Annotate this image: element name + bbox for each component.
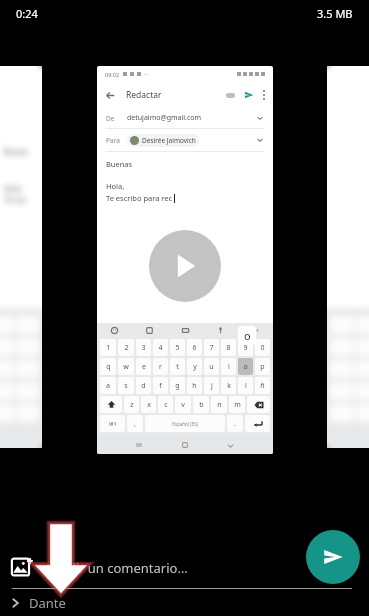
staticText: 9 (243, 343, 248, 353)
staticText: l (245, 381, 247, 391)
button[interactable] (245, 415, 270, 432)
button[interactable]: e (136, 358, 151, 375)
button[interactable]: l (238, 377, 253, 394)
button[interactable]: o (238, 358, 253, 375)
staticText: 0:24 (16, 6, 38, 21)
button[interactable]: 7 (204, 339, 219, 356)
staticText: detujaimo@gmail.com (127, 113, 202, 123)
button[interactable]: j (204, 377, 219, 394)
staticText: 2 (124, 343, 129, 353)
button[interactable]: 0 (255, 339, 270, 356)
staticText: De (106, 114, 115, 123)
button[interactable]: . (227, 415, 243, 432)
button[interactable]: b (193, 396, 209, 413)
button[interactable]: m (229, 396, 245, 413)
button[interactable]: Español (ES) (145, 415, 225, 432)
button[interactable]: d (136, 377, 151, 394)
button[interactable]: 5 (170, 339, 185, 356)
staticText: b (199, 400, 204, 410)
button[interactable]: Add image (7, 552, 37, 582)
staticText: !#1 (108, 420, 117, 427)
button[interactable]: s (118, 377, 134, 394)
button[interactable]: Home (181, 441, 189, 449)
staticText: 6 (192, 343, 197, 353)
button[interactable]: f (153, 377, 168, 394)
button[interactable]: Send (306, 530, 360, 584)
staticText: , (134, 419, 136, 429)
staticText: s (124, 381, 128, 391)
staticText: Buenas (106, 159, 133, 169)
staticText: u (209, 362, 214, 372)
button[interactable]: t (170, 358, 185, 375)
staticText: q (106, 362, 111, 372)
staticText: i (228, 362, 230, 372)
button[interactable]: v (175, 396, 191, 413)
button[interactable]: u (204, 358, 219, 375)
button[interactable]: x (141, 396, 156, 413)
staticText: g (175, 381, 180, 391)
staticText: Redactar (126, 89, 162, 101)
staticText: n (217, 400, 222, 410)
staticText: ñ (260, 381, 265, 391)
button[interactable]: g (170, 377, 185, 394)
button[interactable]: 9 (238, 339, 253, 356)
staticText: 0 (260, 343, 265, 353)
button[interactable]: ñ (255, 377, 270, 394)
button[interactable]: z (124, 396, 139, 413)
button[interactable]: 4 (153, 339, 168, 356)
button[interactable]: 2 (118, 339, 134, 356)
button[interactable]: Play (149, 230, 221, 302)
staticText: Hola, (106, 181, 125, 191)
button[interactable]: n (211, 396, 227, 413)
button[interactable]: h (187, 377, 202, 394)
button[interactable]: a (100, 377, 116, 394)
staticText: f (159, 381, 162, 391)
staticText: e (142, 362, 146, 372)
staticText: Dante (29, 594, 66, 612)
button[interactable]: p (255, 358, 270, 375)
staticText: t (176, 362, 179, 372)
staticText: c (164, 400, 168, 410)
button[interactable]: y (187, 358, 202, 375)
button[interactable]: 6 (187, 339, 202, 356)
staticText: 4 (158, 343, 163, 353)
button[interactable]: , (127, 415, 143, 432)
button[interactable]: i (221, 358, 236, 375)
staticText: Español (ES) (172, 421, 198, 427)
staticText: Te escribo para rec (106, 193, 173, 203)
button[interactable]: 3 (136, 339, 151, 356)
button[interactable]: w (118, 358, 134, 375)
staticText: o (244, 328, 251, 343)
staticText: 8 (226, 343, 231, 353)
staticText: w (123, 362, 129, 372)
staticText: x (147, 400, 151, 410)
staticText: j (211, 381, 213, 391)
button[interactable] (247, 396, 270, 413)
button[interactable]: 8 (221, 339, 236, 356)
staticText: Hola (4, 183, 22, 194)
staticText: 5 (175, 343, 180, 353)
button[interactable]: 1 (100, 339, 116, 356)
staticText: Para (106, 136, 120, 145)
staticText: m (234, 400, 241, 410)
staticText: z (130, 400, 134, 410)
staticText: 3 (141, 343, 146, 353)
button[interactable]: !#1 (100, 415, 125, 432)
staticText: 1 (106, 343, 111, 353)
staticText: d (141, 381, 146, 391)
button[interactable]: q (100, 358, 116, 375)
staticText: Te esc (4, 194, 27, 205)
button[interactable]: Dante (8, 594, 66, 612)
button[interactable]: Recents (135, 441, 143, 449)
button[interactable]: c (158, 396, 173, 413)
staticText: v (181, 400, 185, 410)
staticText: Desirée Jaimovich (142, 136, 196, 145)
button[interactable]: 09:02 (97, 66, 273, 454)
staticText: 3.5 MB (317, 6, 353, 21)
button[interactable]: r (153, 358, 168, 375)
button[interactable]: k (221, 377, 236, 394)
staticText: Buena (4, 146, 29, 157)
button[interactable] (100, 396, 122, 413)
staticText: a (106, 381, 110, 391)
button[interactable]: Hide keyboard (226, 441, 235, 450)
